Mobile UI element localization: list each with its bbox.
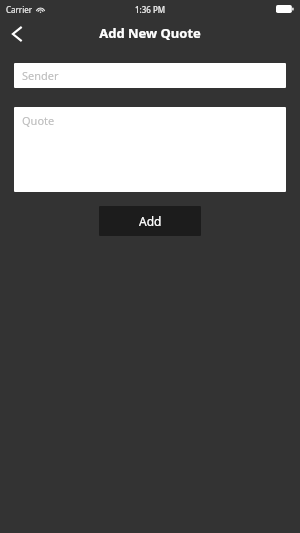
- staticText: Add: [139, 213, 162, 229]
- button[interactable]: Sender: [14, 63, 286, 88]
- staticText: 1:36 PM: [135, 4, 166, 15]
- button[interactable]: Quote: [14, 107, 286, 192]
- button[interactable]: Add: [99, 206, 201, 236]
- staticText: Quote: [22, 113, 55, 128]
- staticText: Add New Quote: [99, 24, 201, 42]
- staticText: Carrier: [6, 4, 33, 15]
- button[interactable]: Back: [0, 18, 34, 50]
- staticText: Sender: [22, 68, 59, 83]
